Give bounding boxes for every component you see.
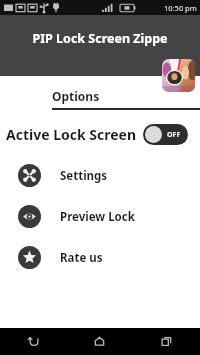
staticText: PIP Lock Screen Zippe	[32, 30, 168, 47]
button[interactable]: Rate us	[0, 242, 200, 273]
other: Settings	[22, 168, 37, 183]
button[interactable]: App icon	[162, 59, 195, 92]
button[interactable]: Home	[66, 328, 133, 355]
button[interactable]: Recents	[133, 328, 200, 355]
staticText: Options	[52, 88, 100, 104]
staticText: Rate us	[60, 250, 103, 266]
staticText: Settings	[60, 168, 108, 184]
button[interactable]: Options	[0, 79, 200, 108]
other: Rate us	[22, 250, 37, 265]
staticText: OFF	[167, 130, 181, 140]
button[interactable]: Preview Lock	[0, 201, 200, 232]
button[interactable]: Back	[0, 328, 66, 355]
button[interactable]: Settings	[0, 160, 200, 191]
staticText: Active Lock Screen	[6, 125, 137, 144]
staticText: Preview Lock	[60, 209, 135, 225]
button[interactable]: Active Lock Screen toggle, off	[143, 124, 188, 145]
other: Preview Lock	[22, 209, 37, 224]
button[interactable]: Active Lock Screen	[0, 121, 200, 148]
staticText: 10:50 pm	[164, 3, 197, 13]
